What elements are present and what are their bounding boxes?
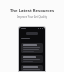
button[interactable]: Search xyxy=(26,32,38,35)
button[interactable] xyxy=(21,43,43,53)
staticText: Improve Your Art Quality xyxy=(0,15,64,19)
button[interactable] xyxy=(21,55,43,63)
staticText: The Latest Resources xyxy=(0,8,64,14)
button[interactable] xyxy=(21,65,43,71)
